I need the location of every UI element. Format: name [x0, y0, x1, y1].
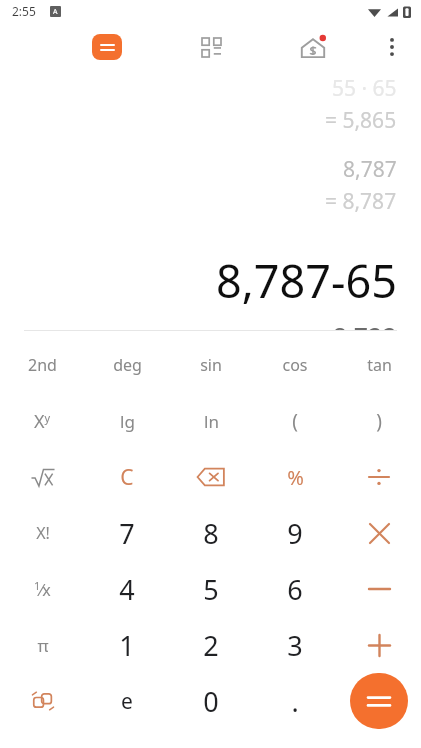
staticText: 9	[287, 515, 303, 552]
button[interactable]: 1	[85, 617, 169, 673]
button[interactable]: Unit converter	[0, 673, 85, 729]
button[interactable]: X!	[0, 505, 85, 561]
staticText: 0	[203, 683, 219, 720]
staticText: )	[376, 408, 382, 434]
staticText: (	[292, 408, 298, 434]
staticText: 1⁄x	[34, 578, 51, 600]
button[interactable]: .	[253, 673, 337, 729]
button[interactable]: sin	[169, 337, 253, 393]
button[interactable]: 2	[169, 617, 253, 673]
button[interactable]: 7	[85, 505, 169, 561]
button[interactable]: deg	[85, 337, 169, 393]
button[interactable]: Multiply	[337, 505, 421, 561]
button[interactable]: 4	[85, 561, 169, 617]
button[interactable]: ln	[169, 393, 253, 449]
button[interactable]: Equals	[350, 673, 408, 729]
staticText: deg	[113, 354, 142, 376]
button[interactable]: Minus	[337, 561, 421, 617]
staticText: Xy	[34, 409, 51, 434]
staticText: .	[291, 683, 299, 720]
staticText: 8,787-65	[216, 250, 397, 311]
button[interactable]: 0	[169, 673, 253, 729]
staticText: 6	[287, 571, 303, 608]
staticText: X!	[36, 522, 50, 544]
staticText: 3	[287, 627, 303, 664]
button[interactable]: Finance	[296, 30, 330, 64]
staticText: cos	[282, 354, 308, 376]
staticText: 4	[119, 571, 135, 608]
button[interactable]: π	[0, 617, 85, 673]
button[interactable]: Converters	[196, 32, 226, 62]
staticText: 2	[203, 627, 219, 664]
button[interactable]: e	[85, 673, 169, 729]
button[interactable]: More options	[375, 30, 409, 64]
button[interactable]: 8	[169, 505, 253, 561]
staticText: 2:55	[12, 3, 36, 19]
staticText: lg	[120, 410, 135, 433]
button[interactable]: tan	[337, 337, 421, 393]
button[interactable]: Xy	[0, 393, 85, 449]
button[interactable]: (	[253, 393, 337, 449]
button[interactable]: 1⁄x	[0, 561, 85, 617]
staticText: = 8,787	[325, 187, 397, 216]
button[interactable]: 9	[253, 505, 337, 561]
button[interactable]: Calculator	[92, 34, 122, 60]
staticText: = 8,722	[312, 319, 397, 330]
button[interactable]: Plus	[337, 617, 421, 673]
staticText: 1	[119, 627, 135, 664]
staticText: π	[37, 634, 49, 657]
staticText: sin	[200, 354, 222, 376]
button[interactable]: %	[253, 449, 337, 505]
staticText: 8	[203, 515, 219, 552]
staticText: 55 · 65	[332, 74, 397, 103]
button[interactable]: cos	[253, 337, 337, 393]
button[interactable]: )	[337, 393, 421, 449]
button[interactable]: Backspace	[169, 449, 253, 505]
staticText: = 5,865	[325, 106, 397, 135]
staticText: ln	[204, 410, 219, 433]
button[interactable]: 5	[169, 561, 253, 617]
button[interactable]: lg	[85, 393, 169, 449]
button[interactable]: C	[85, 449, 169, 505]
staticText: C	[120, 463, 134, 492]
button[interactable]: 3	[253, 617, 337, 673]
staticText: 2nd	[28, 354, 57, 376]
staticText: tan	[367, 354, 392, 376]
staticText: 5	[203, 571, 219, 608]
button[interactable]: 2nd	[0, 337, 85, 393]
button[interactable]: Divide	[337, 449, 421, 505]
button[interactable]: 6	[253, 561, 337, 617]
staticText: 8,787	[343, 155, 397, 184]
button[interactable]: Square root	[0, 449, 85, 505]
staticText: e	[121, 687, 133, 716]
staticText: 7	[119, 515, 135, 552]
staticText: %	[287, 464, 304, 491]
staticText: A	[53, 7, 58, 17]
